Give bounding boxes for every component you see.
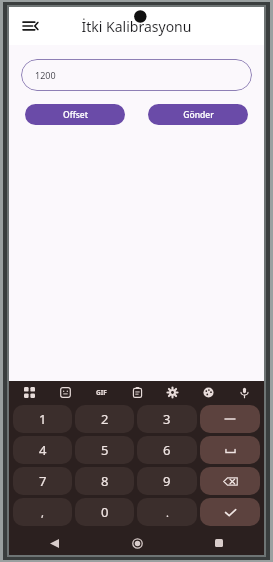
- button[interactable]: 4: [13, 436, 72, 464]
- staticText: 0: [101, 503, 109, 521]
- staticText: 1: [39, 410, 47, 428]
- button[interactable]: Settings: [162, 382, 182, 402]
- staticText: 1200: [35, 69, 56, 81]
- staticText: Gönder: [183, 109, 214, 121]
- button[interactable]: 2: [75, 405, 134, 433]
- button[interactable]: Themes: [198, 382, 218, 402]
- button[interactable]: Space: [200, 436, 260, 464]
- button[interactable]: 3: [137, 405, 197, 433]
- button[interactable]: Navigation menu: [17, 13, 43, 39]
- button[interactable]: 7: [13, 467, 72, 495]
- staticText: 5: [101, 441, 109, 459]
- button[interactable]: Gönder: [148, 104, 248, 125]
- button[interactable]: Home: [126, 532, 148, 554]
- staticText: İtki Kalibrasyonu: [9, 17, 264, 36]
- button[interactable]: Back: [43, 532, 65, 554]
- button[interactable]: 1200: [21, 59, 252, 91]
- button[interactable]: Keyboard layouts: [19, 382, 39, 402]
- staticText: 8: [101, 472, 109, 490]
- staticText: GIF: [96, 388, 107, 397]
- button[interactable]: .: [137, 498, 197, 526]
- button[interactable]: Minus: [200, 405, 260, 433]
- button[interactable]: Voice input: [234, 382, 254, 402]
- staticText: ,: [41, 505, 44, 520]
- staticText: 4: [39, 441, 47, 459]
- button[interactable]: ,: [13, 498, 72, 526]
- button[interactable]: 6: [137, 436, 197, 464]
- button[interactable]: Enter: [200, 498, 260, 526]
- button[interactable]: 5: [75, 436, 134, 464]
- button[interactable]: GIF: [91, 382, 111, 402]
- button[interactable]: 1: [13, 405, 72, 433]
- staticText: 2: [101, 410, 109, 428]
- staticText: 7: [39, 472, 47, 490]
- button[interactable]: Offset: [25, 104, 125, 125]
- staticText: 6: [163, 441, 171, 459]
- staticText: 9: [163, 472, 171, 490]
- staticText: .: [166, 505, 169, 520]
- staticText: 3: [163, 410, 171, 428]
- button[interactable]: 9: [137, 467, 197, 495]
- button[interactable]: 8: [75, 467, 134, 495]
- button[interactable]: Stickers: [55, 382, 75, 402]
- button[interactable]: Recent apps: [208, 532, 230, 554]
- button[interactable]: 0: [75, 498, 134, 526]
- button[interactable]: Clipboard: [127, 382, 147, 402]
- button[interactable]: Backspace: [200, 467, 260, 495]
- staticText: Offset: [63, 109, 88, 121]
